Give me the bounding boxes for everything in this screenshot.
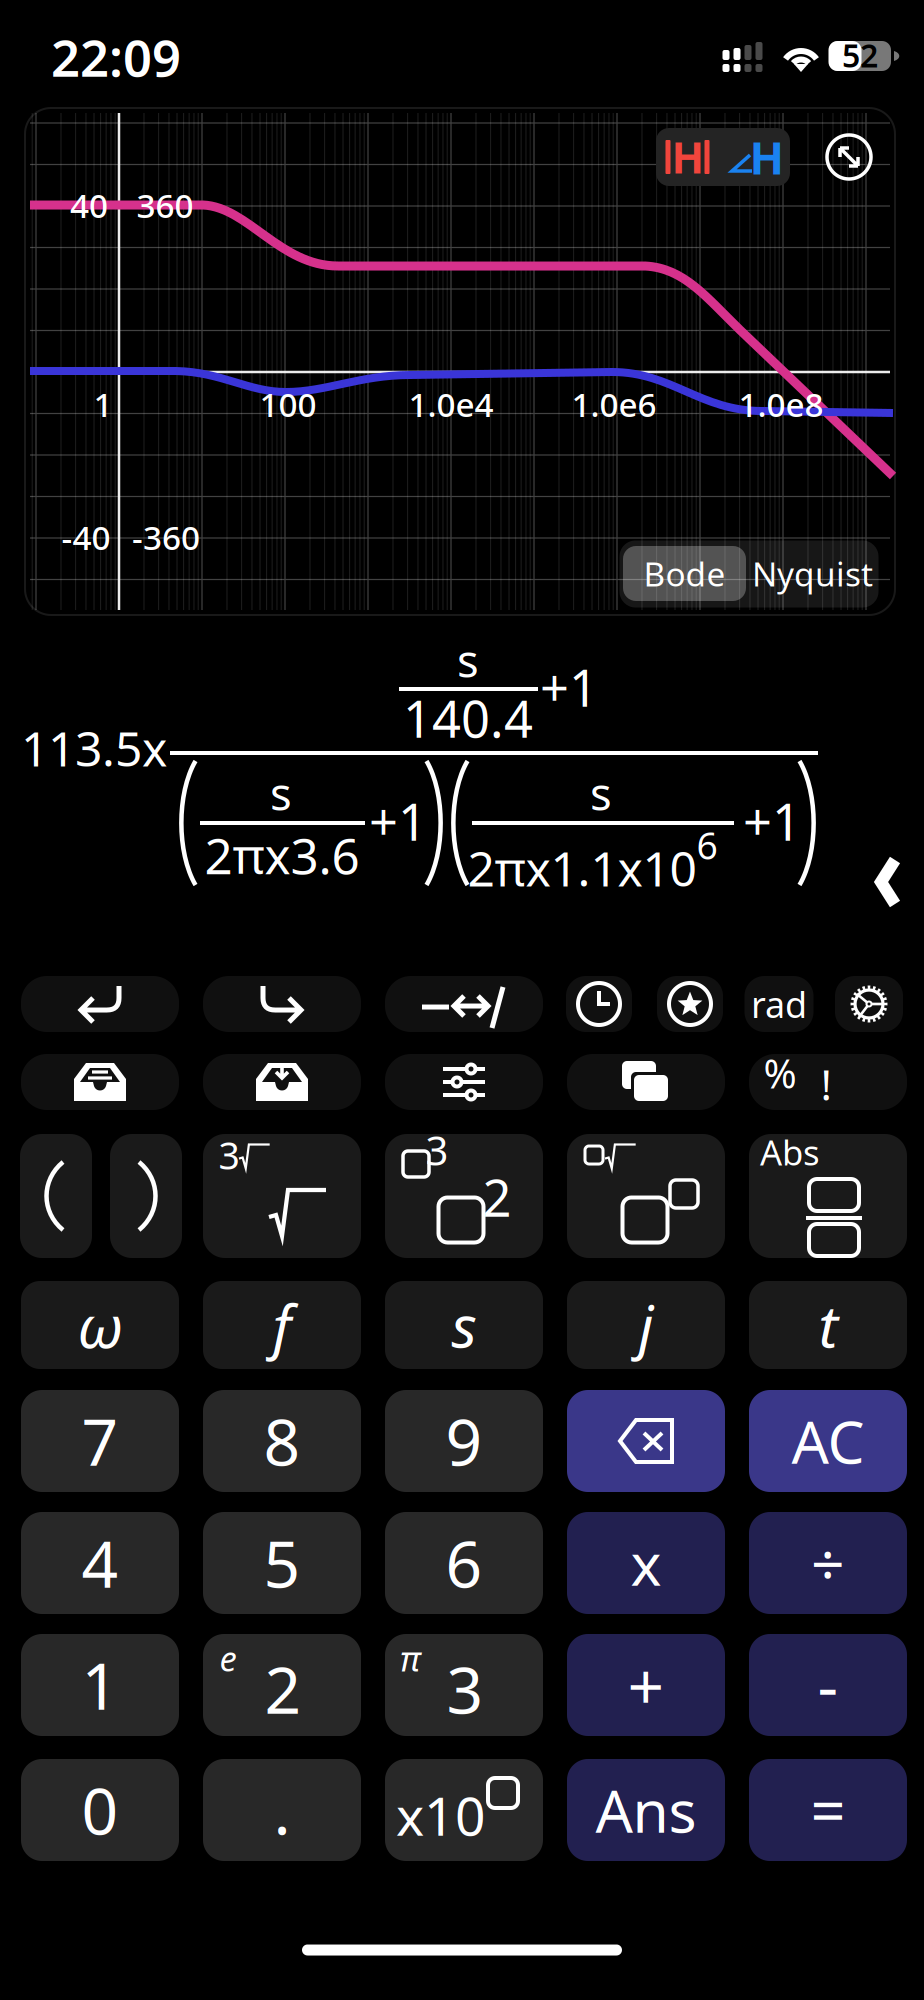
button[interactable]: Favorites [657, 976, 723, 1032]
button[interactable]: t [749, 1281, 907, 1369]
staticText: 0 [81, 1767, 118, 1852]
staticText: 52 [842, 34, 878, 76]
button[interactable]: π [385, 1634, 543, 1736]
button[interactable]: 6 [385, 1512, 543, 1614]
staticText: 6 [445, 1520, 482, 1605]
button[interactable]: Redo [203, 976, 361, 1032]
button[interactable]: Percent and factorial [749, 1054, 907, 1110]
button[interactable]: rad [744, 976, 813, 1032]
button[interactable]: 0 [21, 1759, 179, 1861]
staticText: x [630, 1524, 661, 1602]
staticText: rad [751, 980, 807, 1028]
staticText: 7 [81, 1398, 118, 1483]
staticText: 22:09 [51, 23, 181, 91]
staticText: j [638, 1286, 653, 1364]
button[interactable]: 5 [203, 1512, 361, 1614]
button[interactable]: Previous expression [855, 836, 921, 928]
button[interactable]: Ans [567, 1759, 725, 1861]
staticText: ÷ [811, 1524, 845, 1602]
staticText: +1 [540, 653, 598, 721]
button[interactable]: Square root [203, 1134, 361, 1258]
staticText: 2πx3.6 [204, 822, 359, 888]
staticText: Abs [760, 1129, 820, 1175]
staticText: 360 [136, 183, 193, 227]
staticText: s [451, 1286, 476, 1364]
staticText: Bode [643, 551, 725, 596]
button[interactable]: Open bracket [20, 1134, 92, 1258]
button[interactable]: = [749, 1759, 907, 1861]
button[interactable]: . [203, 1759, 361, 1861]
staticText: = [810, 1769, 845, 1851]
button[interactable]: Nyquist [748, 546, 876, 601]
button[interactable]: e [203, 1634, 361, 1736]
button[interactable]: Expand plot [825, 133, 873, 181]
button[interactable]: History [566, 976, 632, 1032]
staticText: s [270, 763, 292, 823]
staticText: H [671, 129, 704, 185]
button[interactable]: 9 [385, 1390, 543, 1492]
button[interactable]: 8 [203, 1390, 361, 1492]
staticText: 100 [259, 382, 316, 426]
button[interactable]: Simplify [385, 976, 543, 1032]
button[interactable]: 4 [21, 1512, 179, 1614]
button[interactable]: j [567, 1281, 725, 1369]
staticText: 9 [445, 1398, 482, 1483]
button[interactable]: x [567, 1512, 725, 1614]
staticText: Ans [595, 1771, 696, 1849]
button[interactable]: s [385, 1281, 543, 1369]
staticText: +1 [743, 787, 801, 855]
button[interactable]: Bode [623, 546, 746, 601]
button[interactable]: Delete [567, 1390, 725, 1492]
button[interactable]: 1 [21, 1634, 179, 1736]
button[interactable]: Recall [203, 1054, 361, 1110]
staticText: 5 [263, 1520, 300, 1605]
staticText: 1.0e4 [408, 382, 493, 426]
staticText: 6 [696, 820, 717, 870]
button[interactable]: ω [21, 1281, 179, 1369]
staticText: s [457, 630, 479, 690]
button[interactable]: Magnitude and phase [656, 128, 790, 186]
staticText: 1.0e6 [571, 382, 656, 426]
staticText: 3 [218, 1130, 239, 1180]
button[interactable]: Variables [385, 1054, 543, 1110]
staticText: H [749, 127, 784, 187]
staticText: -360 [132, 515, 200, 559]
staticText: Nyquist [752, 551, 873, 596]
staticText: t [818, 1286, 837, 1364]
staticText: 1.0e8 [738, 382, 823, 426]
button[interactable]: Store [21, 1054, 179, 1110]
button[interactable]: Times ten to the power [385, 1759, 543, 1861]
staticText: 3 [425, 1123, 448, 1176]
staticText: +1 [369, 787, 427, 855]
staticText: . [273, 1767, 290, 1852]
button[interactable]: Undo [21, 976, 179, 1032]
staticText: + [627, 1642, 664, 1727]
button[interactable]: Copy [567, 1054, 725, 1110]
button[interactable]: 7 [21, 1390, 179, 1492]
staticText: f [272, 1286, 291, 1364]
button[interactable]: + [567, 1634, 725, 1736]
staticText: s [590, 763, 612, 823]
button[interactable]: Settings [835, 976, 903, 1032]
staticText: - [817, 1642, 838, 1727]
button[interactable]: Close bracket [110, 1134, 182, 1258]
staticText: 140.4 [403, 684, 533, 752]
staticText: 1 [93, 382, 112, 426]
button[interactable]: - [749, 1634, 907, 1736]
staticText: 4 [81, 1520, 118, 1605]
staticText: 113.5x [21, 716, 167, 780]
button[interactable]: f [203, 1281, 361, 1369]
staticText: 40 [70, 183, 108, 227]
staticText: 3 [446, 1646, 483, 1731]
staticText: ω [77, 1286, 123, 1364]
button[interactable]: ÷ [749, 1512, 907, 1614]
button[interactable]: Cube and square [385, 1134, 543, 1258]
button[interactable]: AC [749, 1390, 907, 1492]
staticText: -40 [61, 515, 110, 559]
staticText: π [400, 1635, 420, 1681]
staticText: 8 [263, 1398, 300, 1483]
button[interactable]: Absolute value [749, 1134, 907, 1258]
staticText: e [219, 1635, 236, 1681]
staticText: 1 [81, 1642, 118, 1727]
button[interactable]: Nth root and power [567, 1134, 725, 1258]
